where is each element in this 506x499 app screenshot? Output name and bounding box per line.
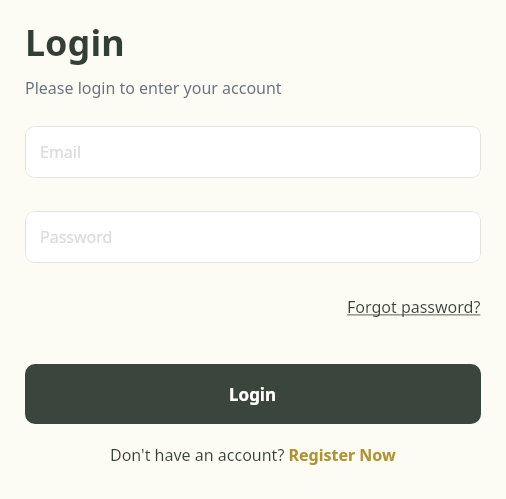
staticText: Password — [40, 226, 113, 248]
button[interactable]: Forgot password? — [347, 296, 481, 318]
staticText: Login — [25, 18, 125, 67]
staticText: Login — [229, 383, 277, 406]
button[interactable]: Login — [25, 364, 481, 424]
staticText: Email — [40, 141, 82, 163]
button[interactable]: Password — [25, 211, 481, 263]
staticText: Please login to enter your account — [25, 77, 282, 99]
button[interactable]: Email — [25, 126, 481, 178]
staticText: Forgot password? — [347, 296, 481, 318]
button[interactable]: Don't have an account? Register Now — [110, 444, 396, 466]
staticText: Don't have an account? Register Now — [110, 444, 396, 466]
